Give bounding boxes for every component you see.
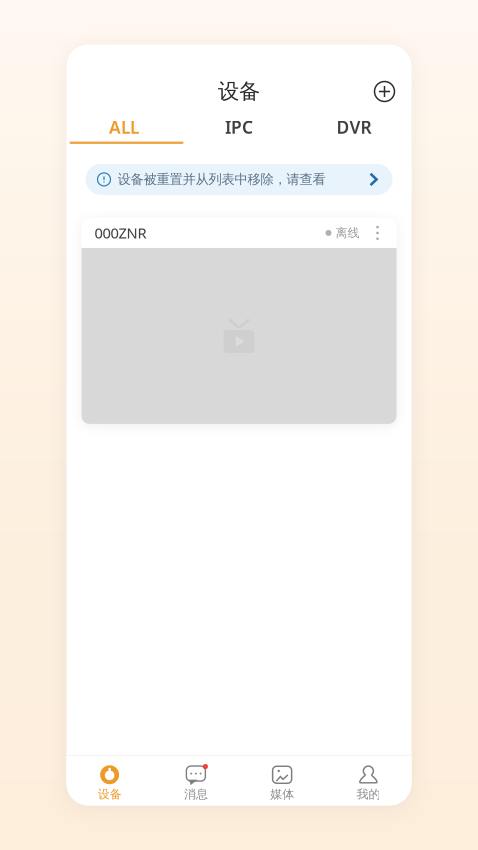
staticText: 000ZNR xyxy=(94,223,146,243)
button[interactable]: Add device xyxy=(374,77,411,105)
button[interactable]: 消息 xyxy=(153,756,239,805)
staticText: 媒体 xyxy=(270,787,294,801)
staticText: IPC xyxy=(225,115,253,138)
staticText: 离线 xyxy=(335,225,359,240)
staticText: 设备 xyxy=(218,78,260,105)
button[interactable]: ALL xyxy=(66,113,181,141)
button[interactable]: IPC xyxy=(181,113,296,141)
staticText: ALL xyxy=(109,115,139,138)
button[interactable]: 设备被重置并从列表中移除，请查看 xyxy=(85,164,392,195)
button[interactable]: 媒体 xyxy=(239,756,325,805)
staticText: 我的 xyxy=(356,787,380,801)
button[interactable]: DVR xyxy=(296,113,411,141)
staticText: DVR xyxy=(336,115,371,138)
button[interactable]: 我的 xyxy=(325,756,411,805)
button[interactable]: More options xyxy=(359,225,384,241)
button[interactable]: 设备 xyxy=(66,756,153,805)
staticText: 设备被重置并从列表中移除，请查看 xyxy=(117,171,325,188)
staticText: 设备 xyxy=(98,787,122,801)
staticText: 消息 xyxy=(184,787,208,801)
